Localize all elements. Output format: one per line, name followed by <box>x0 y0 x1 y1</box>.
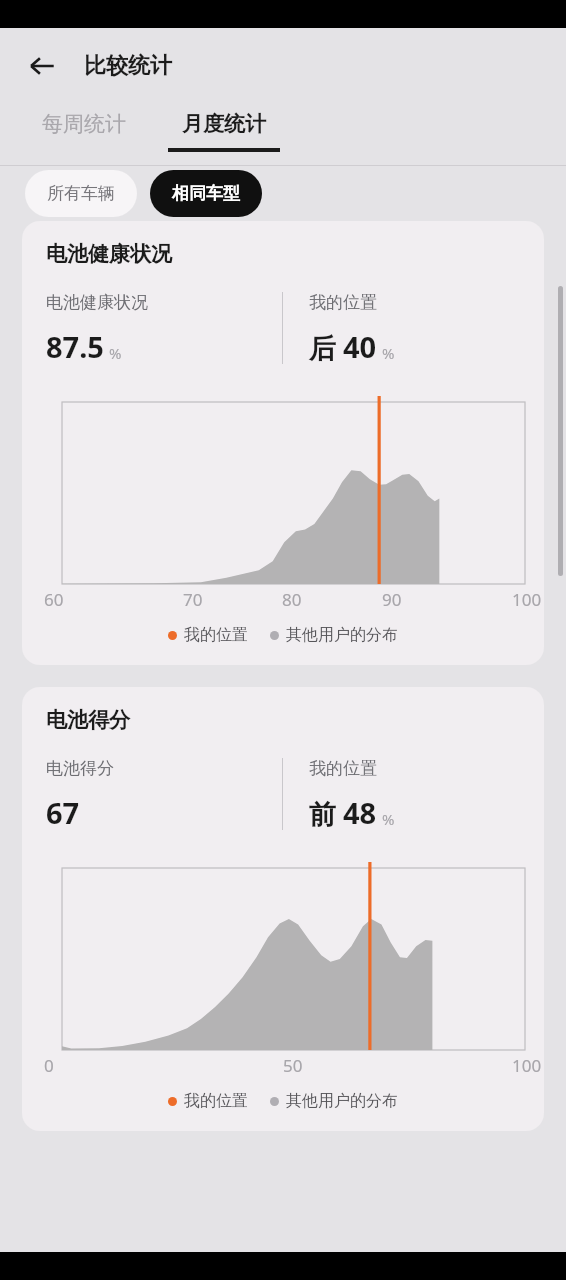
staticText: 0 <box>44 1054 54 1077</box>
button[interactable]: Back <box>18 42 66 90</box>
staticText: % <box>109 343 122 363</box>
button[interactable]: 月度统计 <box>168 103 280 152</box>
staticText: 其他用户的分布 <box>286 625 398 645</box>
staticText: 比较统计 <box>84 52 172 80</box>
staticText: 我的位置 <box>184 625 248 645</box>
staticText: 100 <box>512 1054 542 1077</box>
staticText: 相同车型 <box>172 183 240 204</box>
staticText: 80 <box>282 588 302 611</box>
staticText: 50 <box>283 1054 303 1077</box>
staticText: 其他用户的分布 <box>286 1091 398 1111</box>
staticText: 电池健康状况 <box>46 241 172 267</box>
staticText: 我的位置 <box>184 1091 248 1111</box>
staticText: 每周统计 <box>42 111 126 137</box>
staticText: 40 <box>343 327 377 366</box>
staticText: 90 <box>382 588 402 611</box>
staticText: 48 <box>343 793 377 832</box>
staticText: % <box>382 343 395 363</box>
button[interactable]: 所有车辆 <box>25 170 137 217</box>
staticText: 电池得分 <box>46 758 114 779</box>
staticText: 我的位置 <box>309 292 377 313</box>
staticText: 月度统计 <box>182 111 266 137</box>
staticText: 60 <box>44 588 64 611</box>
button[interactable]: 电池健康状况 <box>22 221 544 665</box>
staticText: 前 <box>309 798 336 832</box>
staticText: 后 <box>309 332 336 366</box>
staticText: 电池得分 <box>46 707 130 733</box>
button[interactable]: 电池得分 <box>22 687 544 1131</box>
staticText: 100 <box>512 588 542 611</box>
staticText: % <box>382 809 395 829</box>
staticText: 我的位置 <box>309 758 377 779</box>
staticText: 87.5 <box>46 327 104 366</box>
button[interactable]: 每周统计 <box>28 103 140 152</box>
staticText: 70 <box>183 588 203 611</box>
staticText: 电池健康状况 <box>46 292 148 313</box>
staticText: 67 <box>46 793 80 832</box>
staticText: 所有车辆 <box>47 183 115 204</box>
button[interactable]: 相同车型 <box>150 170 262 217</box>
